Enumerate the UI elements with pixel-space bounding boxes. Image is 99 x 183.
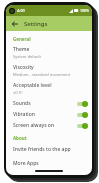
button[interactable]: Acceptable level	[13, 82, 88, 95]
staticText: General	[13, 36, 88, 42]
button[interactable]: Invite friends to the app	[13, 146, 88, 153]
staticText: More Apps	[13, 160, 39, 167]
button[interactable]: Sounds	[13, 98, 88, 109]
staticText: 100%	[80, 8, 89, 13]
staticText: Medium - standard movement	[13, 72, 71, 77]
button[interactable]: Theme	[13, 46, 88, 59]
button[interactable]: Back	[10, 19, 20, 29]
staticText: Invite friends to the app	[13, 146, 71, 153]
button[interactable]: Send feedback	[13, 174, 88, 175]
staticText: ±0.5°	[13, 90, 23, 95]
button[interactable]: Screen always on	[13, 120, 88, 131]
staticText: About	[13, 135, 88, 141]
button[interactable]: Vibration	[13, 109, 88, 120]
staticText: Viscosity	[13, 64, 34, 71]
staticText: Acceptable level	[13, 82, 52, 89]
button[interactable]: Viscosity	[13, 64, 88, 77]
staticText: System default	[13, 54, 41, 59]
staticText: Screen always on	[13, 122, 76, 129]
staticText: Sounds	[13, 100, 76, 107]
staticText: Vibration	[13, 111, 76, 118]
staticText: Settings	[24, 20, 48, 28]
staticText: Theme	[13, 46, 30, 53]
staticText: 4:01	[17, 8, 25, 13]
button[interactable]: More Apps	[13, 160, 88, 167]
